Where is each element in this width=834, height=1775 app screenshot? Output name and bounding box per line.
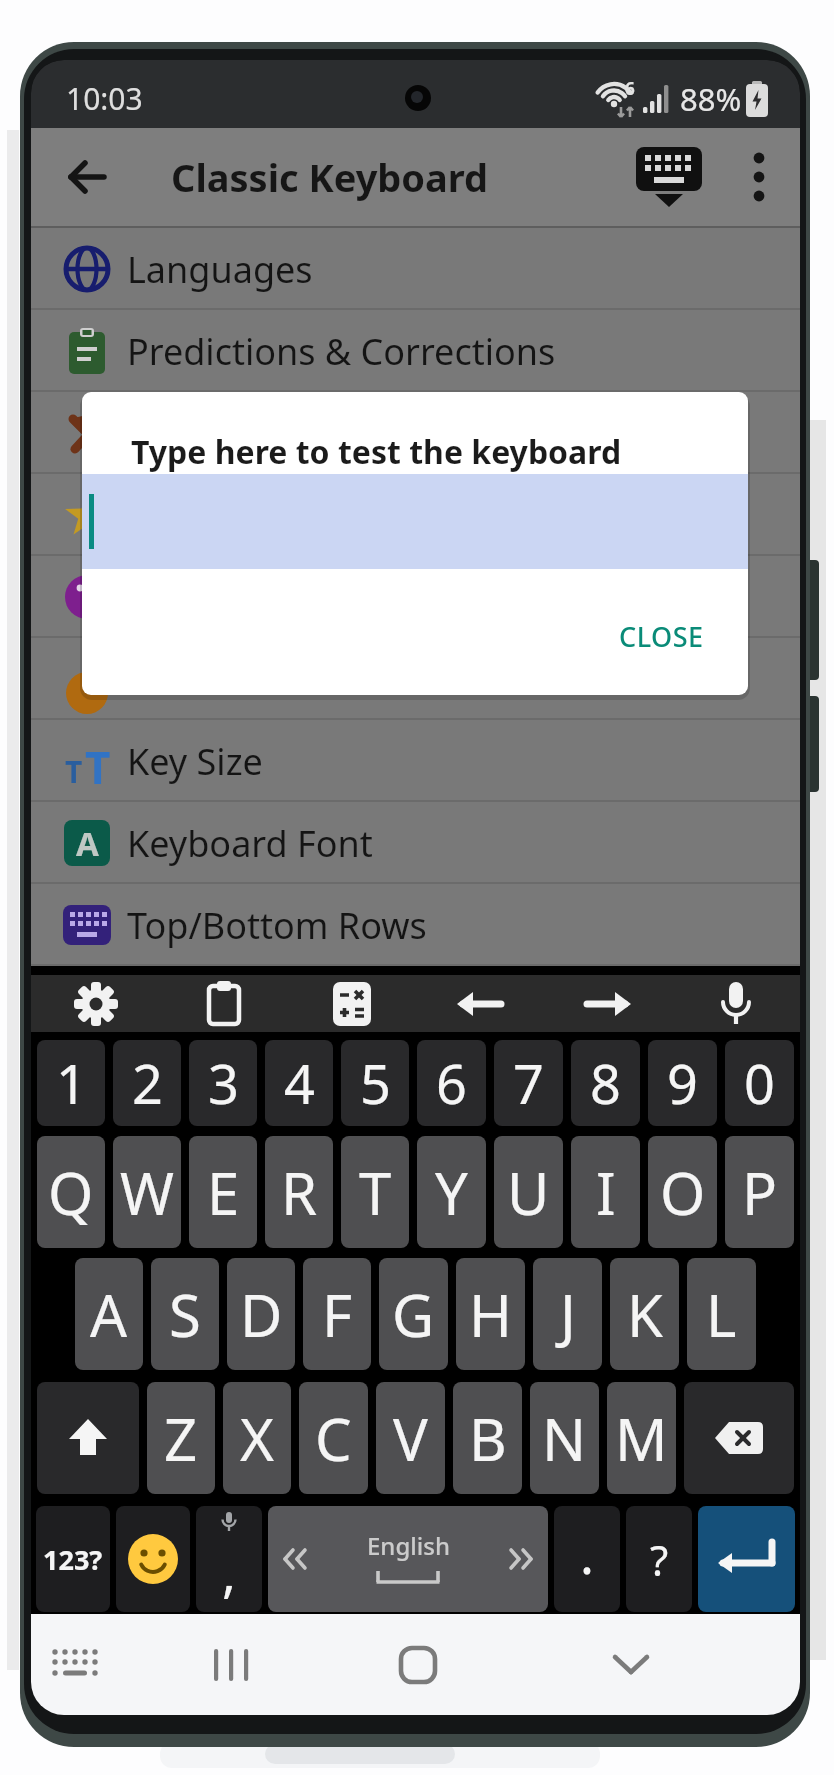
button[interactable]: T (31, 720, 800, 802)
staticText: J (560, 1275, 576, 1354)
button[interactable]: 7 (494, 1040, 563, 1126)
button[interactable] (37, 1382, 139, 1494)
button[interactable] (672, 975, 800, 1032)
button[interactable]: 5 (341, 1040, 409, 1126)
button[interactable]: 1 (37, 1040, 105, 1126)
button[interactable]: A (31, 802, 800, 884)
button[interactable]: S (151, 1258, 219, 1370)
staticText: ? (650, 1531, 669, 1588)
button[interactable]: J (533, 1258, 602, 1370)
button[interactable]: D (227, 1258, 295, 1370)
button[interactable]: Languages (31, 228, 800, 310)
staticText: Q (48, 1153, 94, 1232)
button[interactable] (160, 975, 288, 1032)
button[interactable]: H (456, 1258, 525, 1370)
button[interactable] (288, 975, 416, 1032)
staticText: I (596, 1153, 616, 1232)
staticText: V (393, 1399, 428, 1478)
button[interactable]: Top/Bottom Rows (31, 884, 800, 966)
staticText: T (359, 1153, 392, 1232)
staticText: Classic Keyboard (171, 151, 489, 203)
staticText: D (240, 1275, 283, 1354)
button[interactable]: 123? (36, 1506, 110, 1612)
staticText: Top/Bottom Rows (127, 901, 427, 950)
button[interactable] (31, 975, 160, 1032)
button[interactable] (171, 1625, 291, 1705)
button[interactable]: CLOSE (599, 604, 723, 668)
staticText: A (76, 821, 99, 866)
staticText: G (392, 1275, 435, 1354)
button[interactable]: A (75, 1258, 143, 1370)
button[interactable]: K (610, 1258, 679, 1370)
button[interactable] (684, 1382, 794, 1494)
button[interactable]: O (648, 1136, 717, 1248)
button[interactable]: L (687, 1258, 756, 1370)
button[interactable]: ? (626, 1506, 692, 1612)
button[interactable] (698, 1506, 795, 1612)
staticText: 6 (625, 77, 635, 100)
button[interactable]: X (223, 1382, 291, 1494)
button[interactable] (358, 1625, 478, 1705)
button[interactable] (746, 145, 772, 209)
button[interactable]: English (268, 1506, 548, 1612)
button[interactable]: B (453, 1382, 522, 1494)
staticText: 4 (284, 1046, 315, 1120)
staticText: U (507, 1153, 550, 1232)
button[interactable] (571, 1625, 691, 1705)
staticText: 7 (513, 1046, 544, 1120)
staticText: Predictions & Corrections (127, 327, 556, 376)
button[interactable] (544, 975, 672, 1032)
staticText: T (85, 737, 111, 785)
button[interactable]: M (607, 1382, 676, 1494)
button[interactable]: 9 (648, 1040, 717, 1126)
button[interactable]: U (494, 1136, 563, 1248)
button[interactable] (31, 474, 800, 556)
staticText: 6 (436, 1046, 467, 1120)
button[interactable]: G (379, 1258, 448, 1370)
staticText: 1 (56, 1046, 87, 1120)
button[interactable]: E (189, 1136, 257, 1248)
button[interactable] (31, 556, 800, 638)
staticText: . (580, 1518, 594, 1589)
button[interactable]: P (725, 1136, 794, 1248)
button[interactable]: Predictions & Corrections (31, 310, 800, 392)
button[interactable]: N (530, 1382, 599, 1494)
staticText: Key Size (127, 737, 263, 786)
staticText: T (65, 751, 83, 792)
staticText: K (627, 1275, 663, 1354)
button[interactable]: 4 (265, 1040, 333, 1126)
button[interactable]: 6 (417, 1040, 486, 1126)
button[interactable] (116, 1506, 190, 1612)
button[interactable] (31, 392, 800, 474)
button[interactable]: 0 (725, 1040, 794, 1126)
button[interactable]: Q (37, 1136, 105, 1248)
button[interactable]: , (196, 1506, 262, 1612)
button[interactable]: 8 (571, 1040, 640, 1126)
button[interactable] (416, 975, 544, 1032)
button[interactable]: T (341, 1136, 409, 1248)
staticText: 8 (590, 1046, 621, 1120)
button[interactable]: 2 (113, 1040, 181, 1126)
button[interactable]: . (554, 1506, 620, 1612)
button[interactable] (31, 638, 800, 720)
staticText: , (222, 1536, 236, 1607)
button[interactable]: W (113, 1136, 181, 1248)
staticText: English (367, 1529, 450, 1562)
button[interactable]: R (265, 1136, 333, 1248)
staticText: CLOSE (619, 618, 704, 655)
staticText: Type here to test the keyboard (131, 430, 622, 474)
staticText: 123? (43, 1541, 103, 1578)
button[interactable]: V (376, 1382, 445, 1494)
button[interactable] (63, 153, 111, 201)
staticText: N (542, 1399, 587, 1478)
button[interactable] (634, 142, 704, 212)
staticText: Keyboard Font (127, 819, 373, 868)
button[interactable]: Z (147, 1382, 215, 1494)
button[interactable]: F (303, 1258, 371, 1370)
button[interactable]: C (299, 1382, 368, 1494)
button[interactable]: I (571, 1136, 640, 1248)
button[interactable]: Y (417, 1136, 486, 1248)
button[interactable] (31, 1625, 119, 1705)
button[interactable]: 3 (189, 1040, 257, 1126)
staticText: R (281, 1153, 318, 1232)
